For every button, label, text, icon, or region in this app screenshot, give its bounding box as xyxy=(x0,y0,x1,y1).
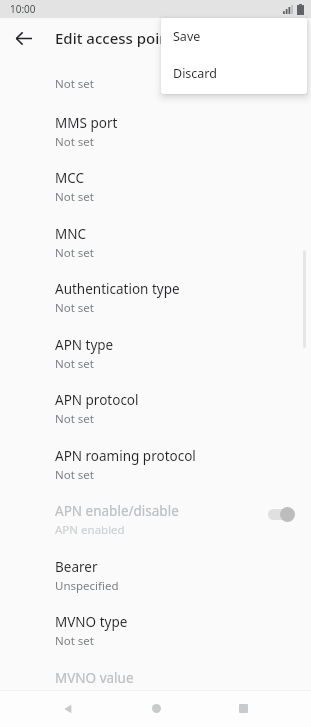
staticText: Edit access point xyxy=(55,28,175,48)
staticText: Discard xyxy=(173,65,217,82)
button[interactable]: Save xyxy=(161,18,307,55)
staticText: APN type xyxy=(55,336,114,354)
button[interactable]: APN type xyxy=(0,330,311,377)
staticText: APN roaming protocol xyxy=(55,447,196,465)
staticText: Not set xyxy=(55,356,94,372)
staticText: MNC xyxy=(55,225,87,243)
button[interactable]: APN roaming protocol xyxy=(0,441,311,488)
button[interactable]: Recents xyxy=(223,690,263,727)
staticText: Authentication type xyxy=(55,280,180,298)
button[interactable]: MCC xyxy=(0,163,311,210)
staticText: Not set xyxy=(55,411,94,427)
staticText: Save xyxy=(173,28,201,45)
staticText: Not set xyxy=(55,689,94,705)
staticText: Not set xyxy=(55,76,94,92)
button[interactable]: Back xyxy=(48,690,88,727)
staticText: MVNO value xyxy=(55,669,134,687)
staticText: APN protocol xyxy=(55,391,139,409)
button[interactable]: MVNO type xyxy=(0,607,311,654)
staticText: Not set xyxy=(55,467,94,483)
staticText: MVNO type xyxy=(55,613,128,631)
button[interactable]: Bearer xyxy=(0,552,311,599)
staticText: Not set xyxy=(55,134,94,150)
button[interactable]: MVNO value xyxy=(0,663,311,710)
button[interactable]: MMS port xyxy=(0,108,311,155)
staticText: APN enable/disable xyxy=(55,502,179,520)
staticText: 10:00 xyxy=(10,2,36,16)
button[interactable]: Home xyxy=(136,690,176,727)
button[interactable]: APN enable/disable xyxy=(0,496,311,543)
button[interactable]: Discard xyxy=(161,55,307,92)
button[interactable]: APN protocol xyxy=(0,385,311,432)
button[interactable]: MNC xyxy=(0,219,311,266)
staticText: APN enabled xyxy=(55,522,125,538)
staticText: Not set xyxy=(55,633,94,649)
staticText: Not set xyxy=(55,300,94,316)
button[interactable]: Authentication type xyxy=(0,274,311,321)
staticText: MCC xyxy=(55,169,85,187)
staticText: Bearer xyxy=(55,558,98,576)
staticText: Not set xyxy=(55,245,94,261)
staticText: Unspecified xyxy=(55,578,119,594)
button[interactable]: Back xyxy=(6,21,40,55)
button[interactable]: Not set xyxy=(0,60,311,107)
staticText: Not set xyxy=(55,189,94,205)
staticText: MMS port xyxy=(55,114,118,132)
